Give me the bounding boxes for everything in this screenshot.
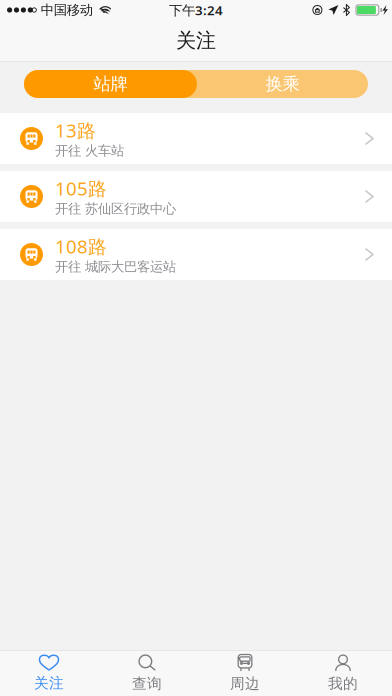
staticText: 中国移动 — [41, 2, 93, 18]
staticText: 下午3:24 — [169, 1, 223, 19]
staticText: 我的 — [328, 674, 358, 692]
button[interactable]: 站牌 — [24, 70, 197, 98]
staticText: 站牌 — [93, 73, 127, 95]
staticText: 关注 — [176, 28, 216, 53]
staticText: 开往 苏仙区行政中心 — [55, 201, 176, 217]
button[interactable]: 换乘 — [197, 70, 368, 98]
button[interactable]: 周边 — [196, 651, 294, 696]
staticText: 查询 — [132, 674, 162, 692]
staticText: 周边 — [230, 674, 260, 692]
staticText: 105路 — [55, 176, 107, 201]
button[interactable]: 13路 — [0, 113, 392, 164]
button[interactable]: 我的 — [294, 651, 392, 696]
button[interactable]: 查询 — [98, 651, 196, 696]
button[interactable]: 关注 — [0, 651, 98, 696]
staticText: 开往 火车站 — [55, 143, 124, 159]
staticText: 13路 — [55, 118, 96, 143]
staticText: 换乘 — [265, 73, 299, 95]
button[interactable]: 108路 — [0, 229, 392, 280]
staticText: 108路 — [55, 234, 107, 259]
staticText: 开往 城际大巴客运站 — [55, 259, 176, 275]
button[interactable]: 105路 — [0, 171, 392, 222]
staticText: 关注 — [34, 674, 64, 692]
